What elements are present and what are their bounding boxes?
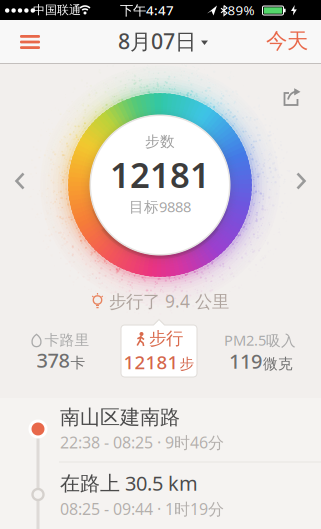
button[interactable]: Menu [8,22,52,62]
staticText: 22:38 - 08:25 · 9时46分 [60,432,224,453]
button[interactable]: 今天 [262,21,312,61]
staticText: 步行 [149,328,183,349]
staticText: 步 [179,355,194,373]
staticText: 卡路里 [44,331,89,349]
staticText: PM2.5吸入 [224,330,296,350]
staticText: 119 [229,348,262,374]
staticText: 在路上 30.5 km [60,470,198,496]
staticText: 08:25 - 09:44 · 1时19分 [60,498,224,519]
staticText: 8月07日 [118,27,196,55]
staticText: 微克 [263,355,293,373]
staticText: 下午4:47 [120,1,174,19]
staticText: 步行了 9.4 公里 [109,289,229,312]
staticText: 今天 [266,28,308,54]
button[interactable]: Next day [296,173,306,188]
staticText: 12181 [110,151,210,197]
staticText: 目标9888 [129,197,191,216]
staticText: 12181 [123,350,178,374]
staticText: 步数 [145,132,175,150]
button[interactable]: Previous day [15,173,25,188]
staticText: 89% [227,1,254,19]
button[interactable]: Share [281,86,303,108]
staticText: 卡 [70,354,85,372]
staticText: 中国联通 [33,3,81,17]
button[interactable]: 南山区建南路 [0,400,321,458]
button[interactable]: 步行 [120,319,198,381]
staticText: 378 [36,347,69,373]
button[interactable]: 8月07日 [118,27,208,55]
button[interactable]: 在路上 30.5 km [0,463,321,525]
staticText: 南山区建南路 [60,405,180,430]
